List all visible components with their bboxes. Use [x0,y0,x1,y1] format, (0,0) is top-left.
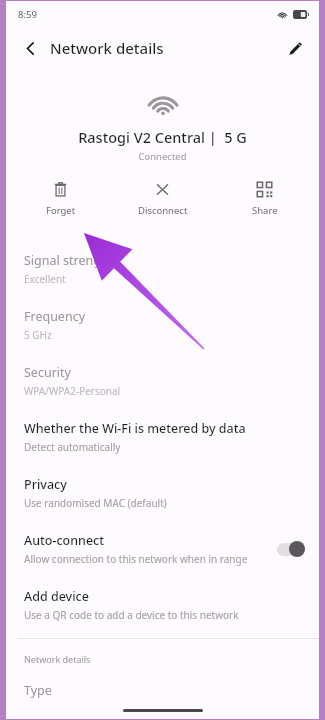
button[interactable]: Share [217,177,312,221]
staticText: Use a QR code to add a device to this ne… [24,608,239,622]
button[interactable]: Auto-connect [6,521,319,577]
staticText: Share [252,204,278,217]
button[interactable]: Edit [279,32,311,64]
button[interactable]: Security [6,353,319,409]
staticText: Privacy [24,476,67,493]
staticText: 5 GHz [24,328,52,342]
staticText: Type [24,682,52,699]
staticText: Rastogi V2 Central | 5 G [78,127,247,147]
button[interactable]: Add device [6,577,319,633]
button[interactable]: Privacy [6,465,319,521]
button[interactable]: Auto-connect toggle [277,541,305,557]
staticText: Excellent [24,272,66,286]
button[interactable]: Whether the Wi-Fi is metered by data [6,409,319,465]
staticText: Disconnect [138,204,188,217]
staticText: 8:59 [18,8,37,21]
staticText: WPA/WPA2-Personal [24,384,121,398]
staticText: Detect automatically [24,440,121,454]
button[interactable]: Frequency [6,297,319,353]
staticText: Add device [24,588,89,605]
staticText: Frequency [24,308,86,325]
button[interactable]: Forget [13,177,108,221]
staticText: Allow connection to this network when in… [24,552,248,566]
staticText: Auto-connect [24,532,105,549]
staticText: Signal strength [24,252,114,269]
button[interactable]: Disconnect [115,177,210,221]
staticText: Use randomised MAC (default) [24,496,167,510]
staticText: Connected [138,150,187,163]
staticText: Network details [24,653,91,665]
staticText: Security [24,364,71,381]
staticText: Network details [50,38,164,58]
button[interactable]: Signal strength [6,241,319,297]
staticText: Whether the Wi-Fi is metered by data [24,420,246,437]
staticText: Forget [46,204,76,217]
button[interactable]: Back [14,32,46,64]
